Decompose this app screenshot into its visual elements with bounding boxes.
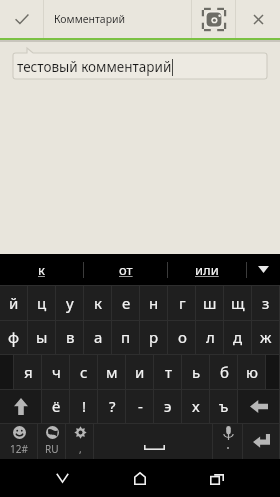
button[interactable]: Symbols [0, 423, 38, 459]
button[interactable]: д [224, 320, 252, 354]
button[interactable]: а [84, 320, 112, 354]
staticText: и [135, 362, 145, 382]
button[interactable]: ы [28, 320, 56, 354]
button[interactable]: в [56, 320, 84, 354]
staticText: ъ [219, 396, 229, 416]
staticText: у [66, 293, 74, 313]
button[interactable]: р [140, 320, 168, 354]
button[interactable]: щ [224, 285, 252, 320]
staticText: ! [82, 396, 87, 416]
staticText: ш [203, 293, 217, 313]
button[interactable]: Backspace [238, 389, 280, 423]
staticText: а [94, 327, 103, 347]
staticText: б [220, 362, 229, 382]
button[interactable]: Voice input [213, 423, 243, 459]
button[interactable]: ь [182, 354, 210, 389]
button[interactable]: ц [28, 285, 56, 320]
button[interactable]: у [56, 285, 84, 320]
staticText: , [79, 442, 82, 456]
button[interactable]: More keys [0, 354, 14, 389]
button[interactable]: б [210, 354, 238, 389]
staticText: е [122, 293, 131, 313]
button[interactable]: More keys [266, 354, 280, 389]
button[interactable]: я [14, 354, 42, 389]
button[interactable]: от [84, 254, 167, 285]
button[interactable]: или [168, 254, 246, 285]
button[interactable]: Space [94, 423, 213, 459]
staticText: э [164, 396, 172, 416]
button[interactable]: ю [238, 354, 266, 389]
button[interactable]: Attach photo [192, 0, 235, 38]
staticText: - [138, 396, 143, 416]
staticText: 12# [10, 442, 28, 456]
staticText: ё [52, 396, 61, 416]
button[interactable]: ё [42, 389, 70, 423]
staticText: м [106, 362, 118, 382]
button[interactable]: ! [70, 389, 98, 423]
button[interactable]: - [126, 389, 154, 423]
button[interactable]: н [140, 285, 168, 320]
button[interactable]: е [112, 285, 140, 320]
staticText: или [195, 261, 219, 279]
staticText: п [121, 327, 131, 347]
staticText: х [192, 396, 200, 416]
staticText: RU [45, 442, 59, 456]
button[interactable]: Close [236, 0, 280, 38]
button[interactable]: с [70, 354, 98, 389]
button[interactable]: о [168, 320, 196, 354]
staticText: щ [231, 293, 245, 313]
button[interactable]: х [182, 389, 210, 423]
button[interactable]: т [154, 354, 182, 389]
button[interactable]: и [126, 354, 154, 389]
staticText: д [233, 327, 243, 347]
button[interactable]: Shift [0, 389, 42, 423]
button[interactable]: Save comment [0, 0, 43, 38]
staticText: ь [192, 362, 201, 382]
button[interactable]: л [196, 320, 224, 354]
staticText: Комментарий [54, 12, 191, 26]
button[interactable]: п [112, 320, 140, 354]
staticText: о [178, 327, 187, 347]
staticText: т [165, 362, 172, 382]
button[interactable]: More suggestions [247, 254, 280, 285]
button[interactable]: ш [196, 285, 224, 320]
button[interactable]: Home [112, 459, 168, 497]
button[interactable]: ч [42, 354, 70, 389]
staticText: ф [8, 327, 20, 347]
button[interactable]: ф [0, 320, 28, 354]
staticText: з [262, 293, 270, 313]
button[interactable]: ? [98, 389, 126, 423]
staticText: ? [109, 396, 116, 416]
staticText: в [66, 327, 75, 347]
button[interactable]: Settings [66, 423, 94, 459]
button[interactable]: э [154, 389, 182, 423]
staticText: ц [37, 293, 47, 313]
staticText: с [80, 362, 88, 382]
button[interactable]: ъ [210, 389, 238, 423]
button[interactable]: ж [252, 320, 280, 354]
staticText: й [9, 293, 19, 313]
button[interactable]: к [0, 254, 83, 285]
button[interactable]: г [168, 285, 196, 320]
staticText: л [206, 327, 215, 347]
button[interactable]: м [98, 354, 126, 389]
button[interactable]: Recent apps [189, 459, 245, 497]
staticText: от [119, 261, 133, 279]
staticText: ю [246, 362, 258, 382]
staticText: ж [260, 327, 272, 347]
staticText: р [149, 327, 159, 347]
button[interactable]: й [0, 285, 28, 320]
staticText: к [38, 261, 45, 279]
button[interactable]: Enter [243, 423, 280, 459]
staticText: тестовый комментарий [17, 58, 172, 76]
staticText: н [149, 293, 159, 313]
button[interactable]: к [84, 285, 112, 320]
staticText: ч [52, 362, 61, 382]
button[interactable]: Back [34, 459, 90, 497]
staticText: ы [36, 327, 48, 347]
button[interactable]: з [252, 285, 280, 320]
staticText: я [24, 362, 33, 382]
staticText: г [179, 293, 186, 313]
button[interactable]: Language [38, 423, 66, 459]
staticText: к [94, 293, 102, 313]
